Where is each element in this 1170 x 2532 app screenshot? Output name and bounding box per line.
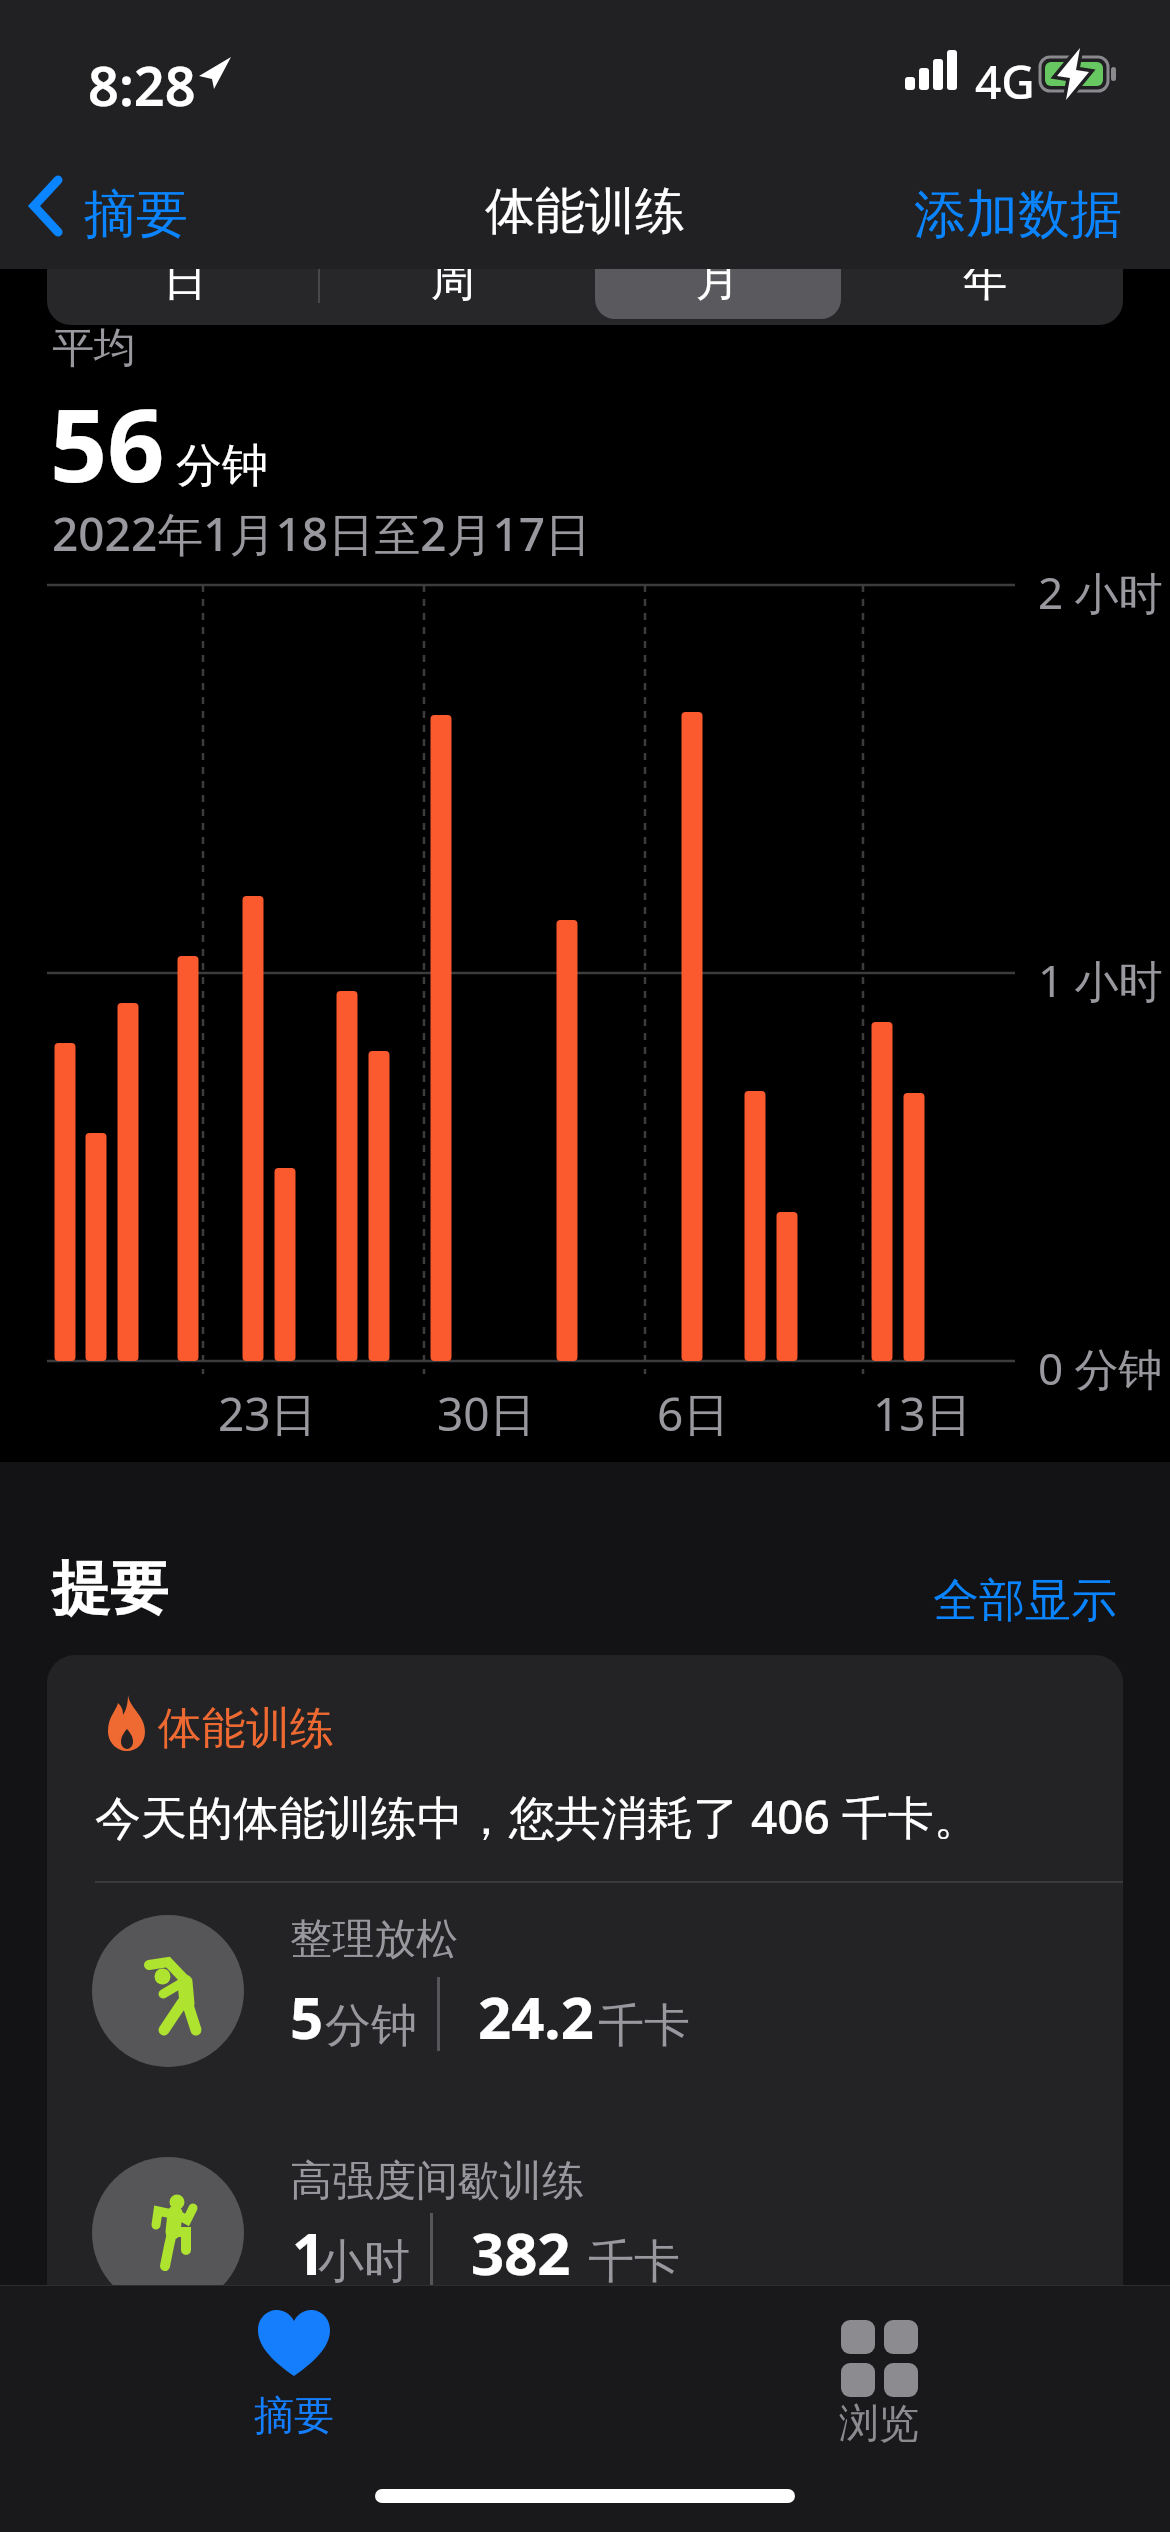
staticText: 23日 (218, 1382, 317, 1445)
button[interactable]: 浏览 (807, 2295, 951, 2445)
button[interactable]: 全部显示 (933, 1572, 1117, 1630)
staticText: 日 (163, 253, 207, 308)
button[interactable] (595, 235, 841, 319)
staticText: 高强度间歇训练 (290, 2155, 584, 2208)
staticText: 56 (50, 375, 165, 511)
staticText: 分钟 (325, 1997, 417, 2055)
staticText: 6日 (657, 1382, 730, 1445)
button[interactable]: 日 (163, 253, 207, 308)
button[interactable]: 月 (696, 253, 740, 308)
staticText: 30日 (437, 1382, 536, 1445)
staticText: 整理放松 (290, 1913, 458, 1966)
button[interactable]: 摘要 (222, 2295, 366, 2445)
staticText: 提要 (52, 1552, 168, 1625)
staticText: 8:28 (88, 48, 196, 122)
staticText: 周 (431, 253, 475, 308)
staticText: 0 分钟 (1038, 1338, 1163, 1398)
staticText: 体能训练 (485, 180, 685, 243)
staticText: 2 小时 (1038, 562, 1163, 622)
staticText: 小时 (318, 2233, 410, 2291)
staticText: 全部显示 (933, 1572, 1117, 1630)
staticText: 1 (292, 2213, 326, 2292)
staticText: 年 (963, 253, 1007, 308)
staticText: 382 (471, 2213, 571, 2292)
staticText: 1 小时 (1038, 950, 1163, 1010)
staticText: 月 (696, 253, 740, 308)
button[interactable]: 体能训练 (47, 1655, 1123, 2323)
staticText: 5 (290, 1977, 324, 2056)
staticText: 摘要 (84, 182, 188, 248)
staticText: 平均 (52, 322, 136, 375)
staticText: 分钟 (176, 437, 268, 495)
staticText: 4G (975, 50, 1035, 113)
staticText: 摘要 (254, 2390, 334, 2440)
button[interactable]: 年 (963, 253, 1007, 308)
staticText: 千卡 (588, 2233, 680, 2291)
staticText: 体能训练 (158, 1701, 334, 1756)
staticText: 13日 (873, 1382, 972, 1445)
staticText: 添加数据 (914, 182, 1122, 248)
staticText: 2022年1月18日至2月17日 (52, 502, 592, 565)
button[interactable]: 添加数据 (914, 182, 1122, 248)
button[interactable]: 摘要 (20, 170, 200, 250)
staticText: 浏览 (839, 2398, 919, 2448)
staticText: 24.2 (478, 1977, 594, 2056)
staticText: 千卡 (598, 1997, 690, 2055)
staticText: 今天的体能训练中，您共消耗了 406 千卡。 (95, 1785, 980, 1848)
button[interactable]: 周 (431, 253, 475, 308)
